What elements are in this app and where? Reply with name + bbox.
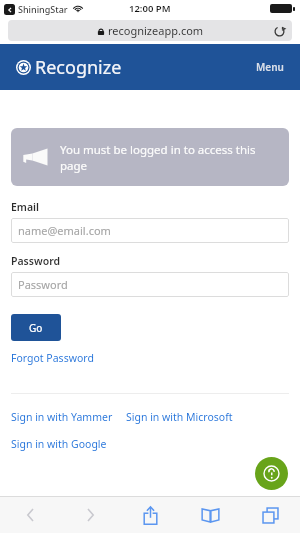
button[interactable]: Menu [254,56,286,78]
button[interactable]: Sign in with Microsoft [126,410,233,424]
staticText: Password [11,254,61,268]
button[interactable]: Back [0,497,60,533]
button[interactable]: Password [11,272,289,297]
staticText: Menu [256,60,284,74]
staticText: Sign in with Google [11,437,107,451]
staticText: Sign in with Yammer [11,410,113,424]
staticText: recognizeapp.com [108,23,204,38]
button[interactable]: name@email.com [11,218,289,243]
button[interactable]: Forward [60,497,120,533]
staticText: Email [11,200,40,214]
staticText: ShiningStar [18,3,68,15]
staticText: 12:00 PM [129,2,171,15]
button[interactable]: Bookmarks [180,497,240,533]
button[interactable]: Reload [272,24,286,38]
button[interactable]: Go [11,314,61,341]
button[interactable]: recognizeapp.com [8,20,292,41]
staticText: Forgot Password [11,351,94,365]
staticText: Recognize [35,55,122,80]
button[interactable]: Forgot Password [11,351,94,365]
button[interactable]: Tabs [240,497,300,533]
button[interactable]: Recognize [16,55,122,80]
staticText: Go [29,321,43,335]
button[interactable]: Share [120,497,180,533]
button[interactable]: Sign in with Google [11,437,107,451]
button[interactable]: Sign in with Yammer [11,410,113,424]
staticText: name@email.com [18,223,111,238]
button[interactable]: Help [255,457,288,490]
staticText: Password [18,277,68,292]
staticText: Sign in with Microsoft [126,410,233,424]
button[interactable]: You must be logged in to access this pag… [11,128,289,186]
staticText: You must be logged in to access this pag… [60,142,275,173]
